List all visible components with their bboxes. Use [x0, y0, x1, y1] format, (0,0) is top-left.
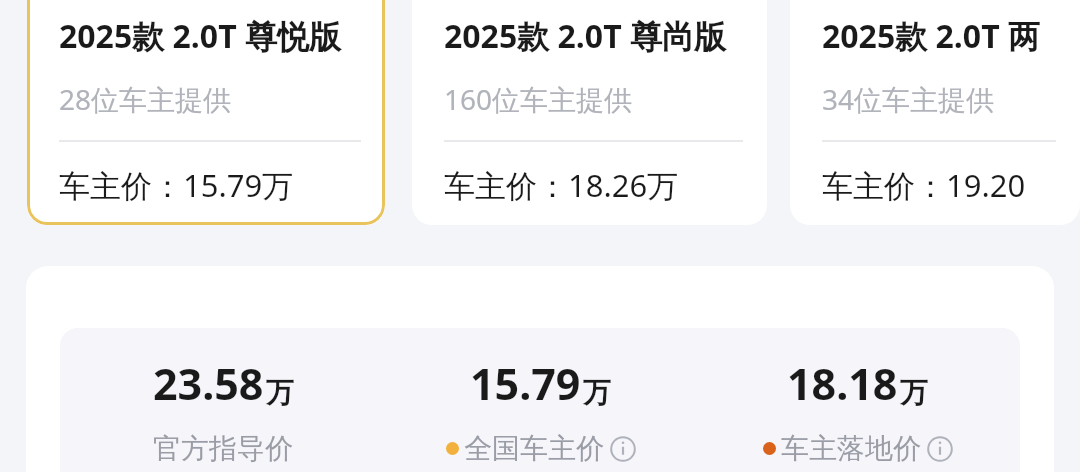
staticText: 160位车主提供 [444, 80, 633, 118]
staticText: 车主落地价 [781, 431, 921, 466]
other: 说明 [610, 436, 636, 462]
staticText: 18.18 [787, 354, 898, 413]
staticText: 2025款 2.0T 尊悦版 [59, 14, 341, 58]
staticText: 车主价：15.79万 [59, 164, 294, 206]
staticText: 15.79 [470, 354, 581, 413]
button[interactable]: 2025款 2.0T 尊尚版 [412, 0, 767, 225]
staticText: 万 [900, 375, 928, 410]
staticText: 车主价：19.20万 [822, 164, 1056, 206]
staticText: 官方指导价 [153, 431, 293, 466]
other: 说明 [927, 436, 953, 462]
button[interactable]: 15.79 [382, 354, 699, 466]
button[interactable]: 2025款 2.0T 两驱 [790, 0, 1080, 225]
button[interactable]: 18.18 [699, 354, 1016, 466]
staticText: 全国车主价 [464, 431, 604, 466]
staticText: 2025款 2.0T 尊尚版 [444, 14, 726, 58]
staticText: 23.58 [153, 354, 264, 413]
staticText: 车主价：18.26万 [444, 164, 679, 206]
staticText: 34位车主提供 [822, 80, 995, 118]
button[interactable]: 2025款 2.0T 尊悦版 [27, 0, 385, 225]
staticText: 万 [583, 375, 611, 410]
staticText: 2025款 2.0T 两驱 [822, 14, 1056, 58]
button[interactable]: 23.58 [64, 354, 382, 466]
staticText: 28位车主提供 [59, 80, 232, 118]
staticText: 万 [266, 375, 294, 410]
